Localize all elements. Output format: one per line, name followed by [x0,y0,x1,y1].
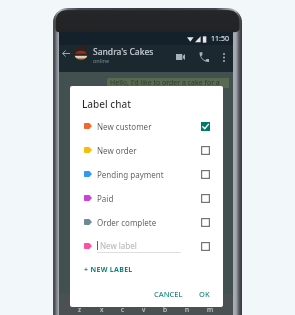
button[interactable]: Toggle label [198,215,212,229]
staticText: New order [97,145,137,156]
staticText: OK [199,289,210,299]
button[interactable]: Video call [170,48,190,66]
button[interactable]: Pending payment [70,162,223,186]
staticText: + NEW LABEL [84,265,133,275]
staticText: v [142,305,146,314]
button[interactable]: Call [194,47,214,67]
button[interactable]: New order [70,138,223,162]
button[interactable]: Toggle label [198,191,212,205]
staticText: CANCEL [154,289,183,299]
staticText: Order complete [97,217,157,228]
staticText: Sandra's Cakes [93,46,154,58]
staticText: m [207,305,214,314]
staticText: c [121,305,125,314]
button[interactable]: Toggle label [198,119,212,133]
staticText: Label chat [82,97,132,111]
button[interactable]: New customer [70,114,223,138]
staticText: Paid [97,193,114,204]
staticText: 11:50 [211,34,229,44]
button[interactable]: CANCEL [150,286,187,302]
button[interactable]: Paid [70,186,223,210]
staticText: z [78,305,82,314]
button[interactable]: Toggle label [198,167,212,181]
staticText: online [93,57,110,64]
button[interactable]: Toggle label [198,239,212,253]
button[interactable]: More options [218,47,230,67]
staticText: b [163,305,167,314]
staticText: Pending payment [97,169,164,180]
button[interactable]: Order complete [70,210,223,234]
button[interactable]: + NEW LABEL [84,265,133,275]
button[interactable]: OK [195,286,214,302]
staticText: New customer [97,121,152,132]
staticText: n [185,305,190,314]
staticText: x [100,305,104,314]
staticText: New label [100,240,137,251]
button[interactable]: Toggle label [198,143,212,157]
button[interactable]: Back [60,47,72,59]
staticText: Hello, I'd like to order a cake for a [110,78,220,88]
